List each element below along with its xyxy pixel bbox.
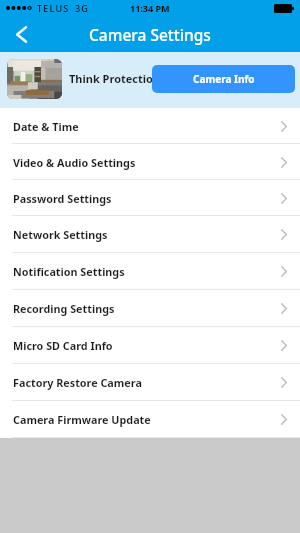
- staticText: Camera Firmware Update: [13, 412, 151, 427]
- button[interactable]: Notification Settings: [0, 253, 300, 290]
- staticText: Camera Info: [193, 72, 255, 86]
- button[interactable]: Password Settings: [0, 180, 300, 216]
- staticText: Micro SD Card Info: [13, 338, 113, 353]
- staticText: Factory Restore Camera: [13, 375, 142, 390]
- staticText: Camera Settings: [89, 24, 211, 45]
- staticText: Network Settings: [13, 227, 108, 242]
- button[interactable]: Camera Info: [152, 65, 295, 93]
- button[interactable]: Recording Settings: [0, 290, 300, 327]
- button[interactable]: Network Settings: [0, 216, 300, 253]
- staticText: Video & Audio Settings: [13, 155, 136, 170]
- button[interactable]: Camera Firmware Update: [0, 401, 300, 438]
- button[interactable]: Date & Time: [0, 108, 300, 144]
- staticText: Notification Settings: [13, 264, 125, 279]
- staticText: Date & Time: [13, 119, 79, 134]
- staticText: 3G: [75, 2, 90, 14]
- button[interactable]: Micro SD Card Info: [0, 327, 300, 364]
- button[interactable]: Back: [0, 16, 44, 52]
- staticText: TELUS: [37, 2, 70, 14]
- button[interactable]: Factory Restore Camera: [0, 364, 300, 401]
- button[interactable]: Video & Audio Settings: [0, 144, 300, 180]
- staticText: Think Protection: [69, 71, 161, 86]
- staticText: Recording Settings: [13, 301, 115, 316]
- staticText: Password Settings: [13, 191, 112, 206]
- staticText: 11:34 PM: [130, 2, 170, 14]
